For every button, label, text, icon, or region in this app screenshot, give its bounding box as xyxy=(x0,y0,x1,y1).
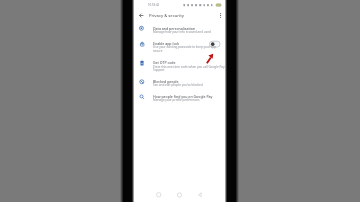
staticText: Privacy & security xyxy=(149,13,184,19)
button[interactable] xyxy=(216,10,225,20)
staticText: Manage how your info is saved and used xyxy=(153,30,211,34)
button[interactable] xyxy=(134,24,225,37)
button[interactable] xyxy=(174,190,185,200)
staticText: Get OTP code xyxy=(153,60,176,65)
button[interactable] xyxy=(136,10,146,20)
staticText: Enable app lock xyxy=(153,41,180,46)
staticText: See and edit people you've blocked xyxy=(153,83,203,87)
staticText: How people find you on Google Pay xyxy=(153,94,213,99)
staticText: Manage your profile preferences xyxy=(153,98,200,102)
button[interactable] xyxy=(134,92,225,104)
button[interactable] xyxy=(134,38,207,54)
button[interactable] xyxy=(153,190,164,200)
staticText: Data and personalisation xyxy=(153,26,195,31)
staticText: Enter this one-time code when you call G… xyxy=(153,65,225,69)
staticText: 10:53:42 xyxy=(148,3,160,7)
staticText: Blocked people xyxy=(153,79,179,84)
button[interactable] xyxy=(208,40,221,48)
staticText: Use your existing passcode to keep your … xyxy=(153,45,217,49)
staticText: Support xyxy=(153,68,165,72)
staticText: secure xyxy=(153,49,163,53)
button[interactable] xyxy=(134,77,225,89)
button[interactable] xyxy=(134,58,225,74)
button[interactable] xyxy=(195,190,206,200)
